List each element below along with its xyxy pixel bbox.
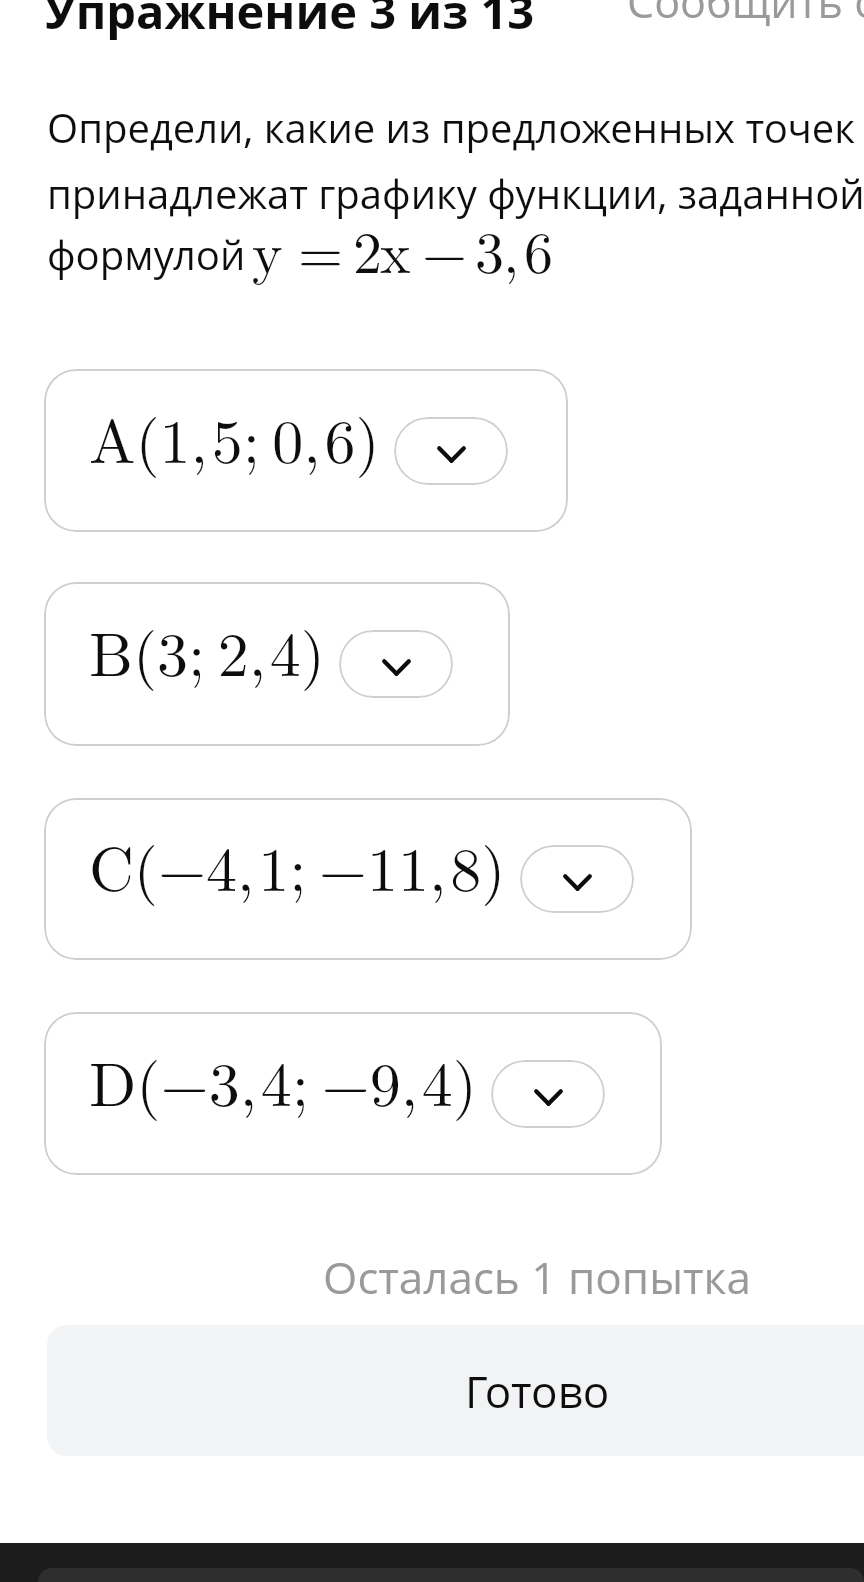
staticText: D(−3, 4; −9, 4) xyxy=(89,1036,477,1124)
staticText: , xyxy=(503,208,520,290)
staticText: C(−4, 1; −11, 8) xyxy=(89,821,506,909)
button[interactable]: C(−4, 1; −11, 8) xyxy=(44,798,692,960)
staticText: y xyxy=(252,208,283,290)
button[interactable]: Показать варианты ответа xyxy=(520,845,634,913)
staticText: Упражнение 3 из 13 xyxy=(45,0,535,43)
button[interactable]: Показать варианты ответа xyxy=(339,630,453,698)
staticText: 6 xyxy=(524,208,554,290)
staticText: Сообщить об ошибке xyxy=(627,0,864,31)
staticText: Определи, какие из предложенных точек xyxy=(47,100,856,154)
staticText: принадлежат графику функции, заданной xyxy=(47,166,864,220)
staticText: Готово xyxy=(465,1361,610,1421)
staticText: A(1, 5; 0, 6) xyxy=(89,393,380,481)
staticText: = xyxy=(298,208,344,290)
staticText: Осталась 1 попытка xyxy=(47,1247,864,1307)
staticText: B(3; 2, 4) xyxy=(89,606,325,694)
staticText: x xyxy=(380,208,411,290)
staticText: формулой xyxy=(47,227,246,281)
staticText: 2 xyxy=(353,208,383,290)
staticText: 3 xyxy=(475,208,505,290)
button[interactable]: A(1, 5; 0, 6) xyxy=(44,369,568,532)
staticText: − xyxy=(422,208,468,290)
button[interactable]: Готово xyxy=(47,1325,864,1456)
button[interactable]: D(−3, 4; −9, 4) xyxy=(44,1012,662,1175)
button[interactable]: Показать варианты ответа xyxy=(491,1060,605,1128)
button[interactable]: B(3; 2, 4) xyxy=(44,582,510,746)
button[interactable]: Показать варианты ответа xyxy=(394,417,508,485)
